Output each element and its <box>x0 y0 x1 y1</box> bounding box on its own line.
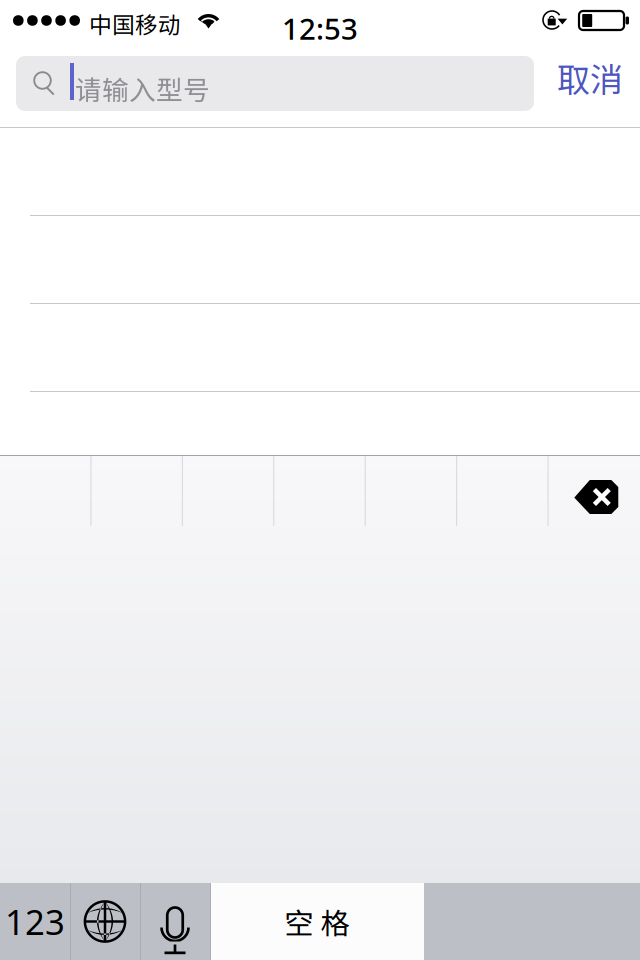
button[interactable]: Search result row <box>0 128 640 216</box>
button[interactable]: Switch keyboard <box>70 883 140 960</box>
staticText: 空 格 <box>284 900 349 943</box>
button[interactable]: 123 <box>0 883 70 960</box>
button[interactable]: Delete <box>549 456 640 526</box>
staticText: 中国移动 <box>89 7 181 40</box>
button[interactable]: Search result row <box>0 216 640 304</box>
staticText: 123 <box>5 898 65 944</box>
staticText: 取消 <box>557 53 623 102</box>
button[interactable]: 空 格 <box>210 883 424 960</box>
staticText: 请输入型号 <box>75 69 210 108</box>
staticText: 12:53 <box>282 9 358 48</box>
button[interactable]: Dictation <box>140 883 210 960</box>
button[interactable]: 取消 <box>557 50 637 105</box>
button[interactable]: Search result row <box>0 304 640 392</box>
